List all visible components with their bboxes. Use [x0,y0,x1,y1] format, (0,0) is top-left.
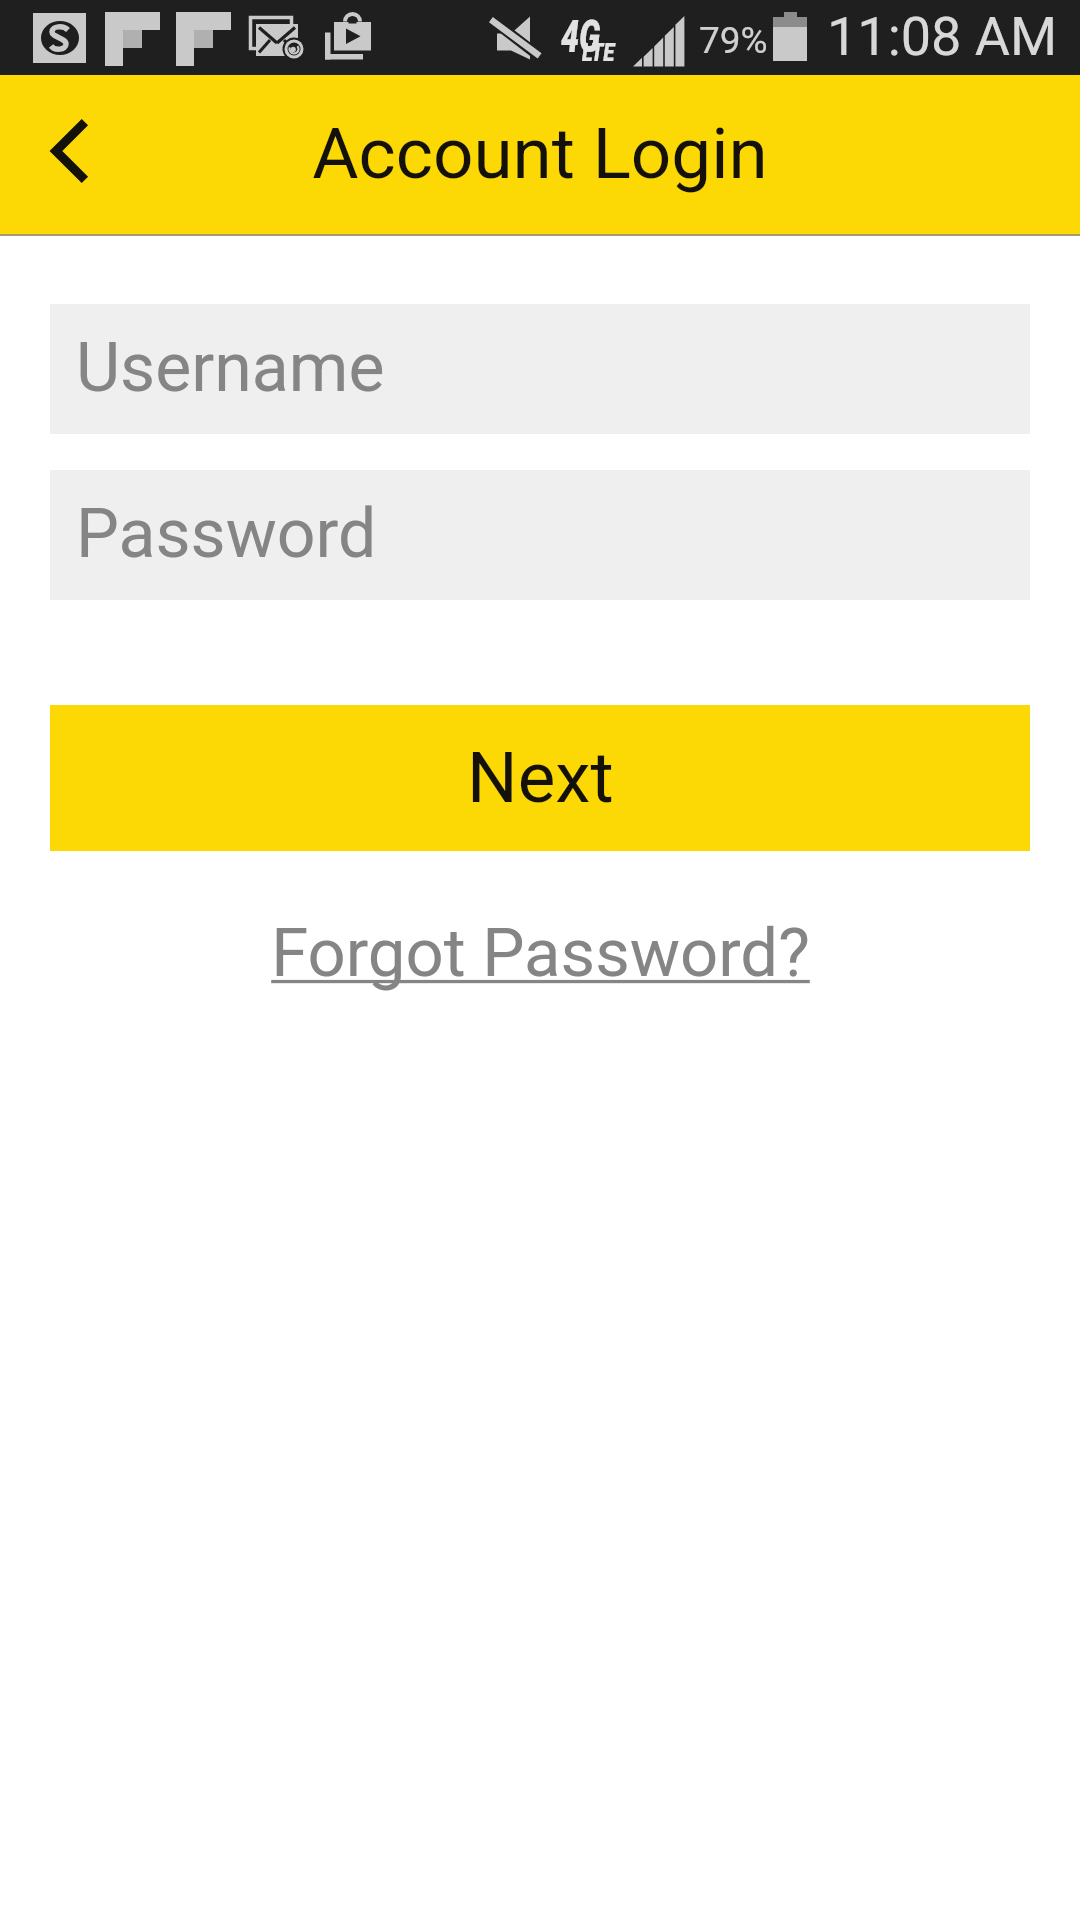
staticText: LTE [582,38,615,67]
staticText: Account Login [312,112,768,195]
staticText: 4G [561,11,600,63]
staticText: 79% [699,19,768,62]
staticText: Forgot Password? [271,914,810,993]
staticText: Next [467,736,614,819]
staticText: 11:08 AM [827,5,1058,68]
staticText: Password [76,494,377,574]
staticText: Username [76,328,385,408]
button[interactable]: Back [0,75,136,234]
button[interactable]: Next [50,705,1030,851]
button[interactable]: Forgot Password? [271,914,810,993]
button[interactable]: Username [50,304,1030,434]
button[interactable]: Password [50,470,1030,600]
